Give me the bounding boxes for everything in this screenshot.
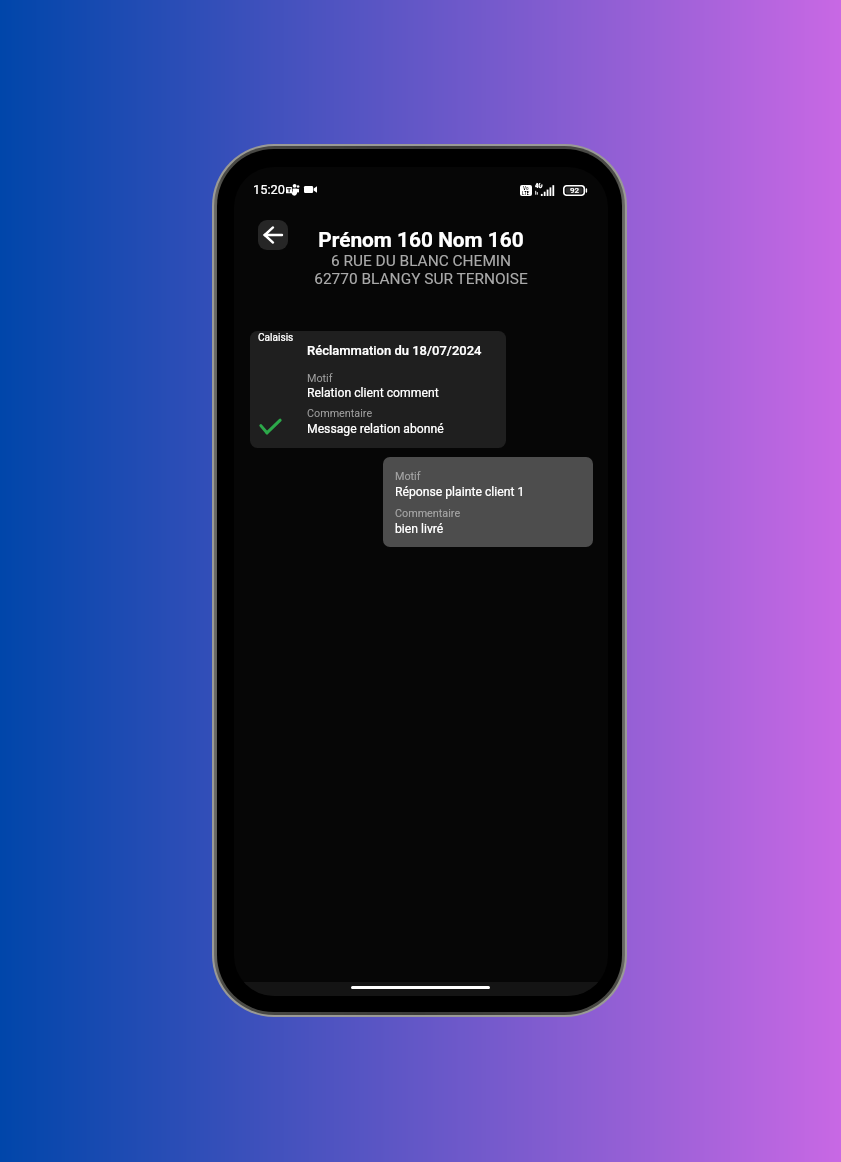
staticText: LTE [522, 191, 530, 196]
button[interactable]: Motif [383, 457, 593, 547]
staticText: bien livré [395, 522, 444, 536]
staticText: Commentaire [307, 407, 373, 420]
staticText: 15:20 [253, 182, 285, 197]
staticText: Commentaire [395, 507, 461, 520]
staticText: 62770 BLANGY SUR TERNOISE [234, 270, 608, 288]
staticText: Réclammation du 18/07/2024 [307, 343, 482, 358]
staticText: Prénom 160 Nom 160 [234, 228, 608, 252]
button[interactable]: Back [258, 220, 288, 250]
staticText: Motif [395, 470, 421, 483]
staticText: Vo [523, 186, 529, 191]
staticText: Calaisis [258, 332, 294, 344]
staticText: 92 [570, 186, 580, 195]
staticText: Réponse plainte client 1 [395, 485, 525, 499]
staticText: Relation client comment [307, 386, 439, 400]
button[interactable]: Calaisis [250, 331, 506, 448]
staticText: Motif [307, 372, 333, 385]
staticText: Message relation abonné [307, 422, 444, 436]
staticText: 6 RUE DU BLANC CHEMIN [234, 252, 608, 270]
